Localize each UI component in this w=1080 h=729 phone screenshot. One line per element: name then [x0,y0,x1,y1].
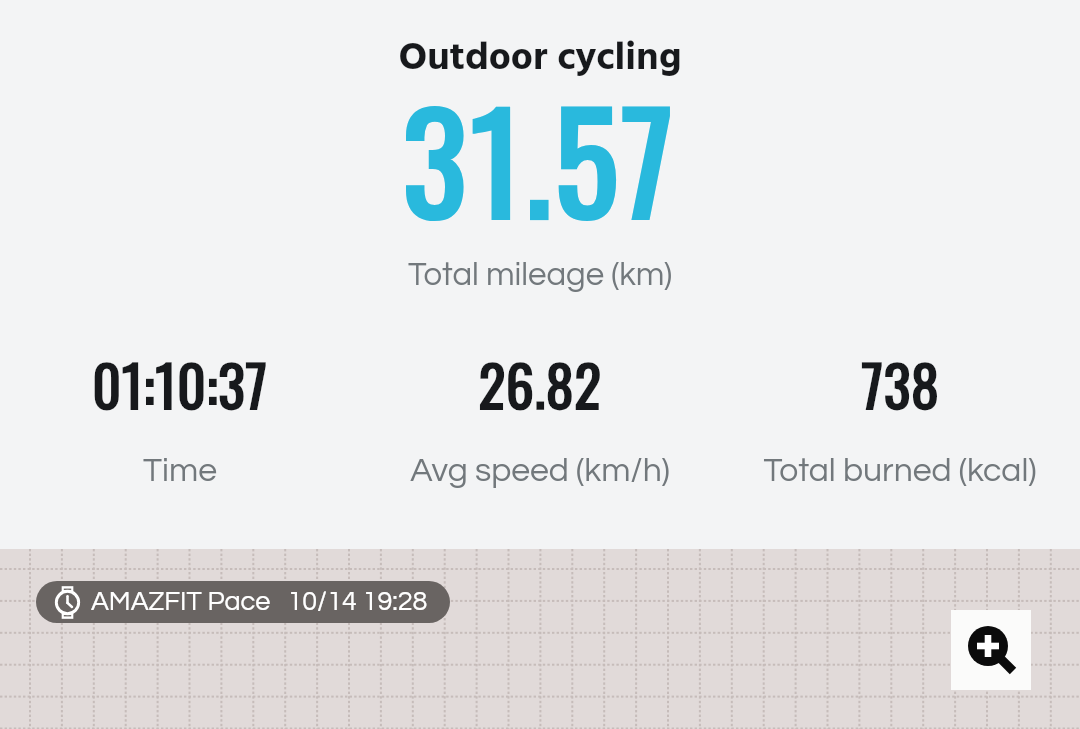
button[interactable]: AMAZFIT Pace 10/14 19:28 [36,581,450,623]
staticText: Total burned (kcal) [763,453,1037,488]
staticText: 26.82 [478,342,602,425]
button[interactable]: Zoom in [951,610,1031,690]
staticText: 01:10:37 [92,342,268,425]
button[interactable]: 01:10:37 [0,342,360,488]
button[interactable]: 26.82 [360,342,720,488]
staticText: Total mileage (km) [0,258,1080,292]
staticText: 738 [861,342,940,425]
staticText: Outdoor cycling [0,28,1080,90]
staticText: Avg speed (km/h) [410,453,670,488]
staticText: Time [143,453,217,488]
staticText: 31.57 [0,58,1080,257]
button[interactable]: 738 [720,342,1080,488]
staticText: AMAZFIT Pace 10/14 19:28 [91,588,428,616]
